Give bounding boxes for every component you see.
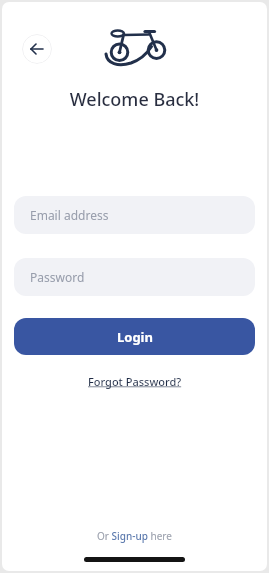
staticText: Welcome Back! [0, 87, 269, 112]
staticText: Login [117, 328, 153, 346]
button[interactable]: Password [14, 258, 255, 296]
button[interactable]: Or Sign-up here [97, 529, 172, 543]
button[interactable] [22, 34, 52, 64]
staticText: Email address [30, 207, 109, 223]
staticText: Password [30, 269, 85, 285]
button[interactable]: Email address [14, 196, 255, 234]
button[interactable]: Forgot Password? [88, 374, 182, 389]
button[interactable]: Login [14, 318, 255, 355]
